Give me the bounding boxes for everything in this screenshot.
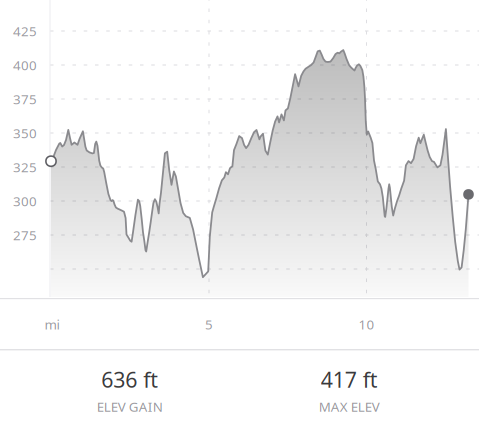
staticText: 5 xyxy=(205,315,213,333)
staticText: 275 xyxy=(13,226,37,244)
staticText: 350 xyxy=(13,124,37,142)
staticText: 300 xyxy=(13,192,37,210)
staticText: 425 xyxy=(13,22,37,40)
staticText: 417 ft xyxy=(321,365,378,394)
staticText: 375 xyxy=(13,90,37,108)
staticText: 10 xyxy=(358,315,374,333)
staticText: mi xyxy=(44,315,59,333)
staticText: ELEV GAIN xyxy=(97,398,163,415)
staticText: 400 xyxy=(13,56,37,74)
staticText: 636 ft xyxy=(101,365,158,394)
staticText: MAX ELEV xyxy=(319,398,380,415)
staticText: 325 xyxy=(13,158,37,176)
